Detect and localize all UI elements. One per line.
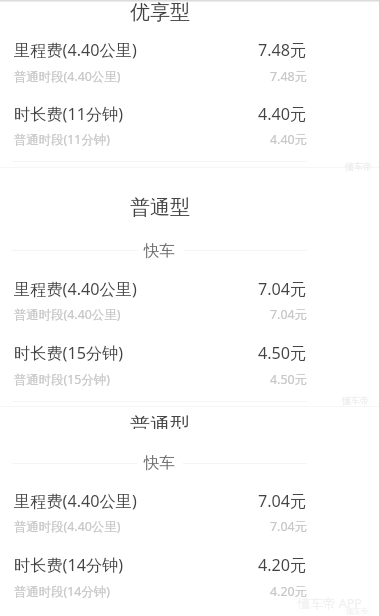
- staticText: 时长费(14分钟): [14, 554, 124, 576]
- button[interactable]: [0, 482, 379, 546]
- staticText: 4.20元: [270, 583, 307, 600]
- staticText: 4.50元: [270, 371, 307, 388]
- staticText: 普通时段(4.40公里): [14, 68, 121, 85]
- staticText: 时长费(15分钟): [14, 342, 124, 364]
- staticText: 懂车帝: [342, 395, 369, 406]
- button[interactable]: [0, 546, 379, 611]
- staticText: 里程费(4.40公里): [14, 278, 137, 300]
- button[interactable]: [0, 31, 379, 95]
- staticText: 快车: [144, 241, 176, 261]
- staticText: 懂车帝: [346, 607, 369, 616]
- staticText: 时长费(11分钟): [14, 103, 124, 125]
- staticText: 普通型: [130, 195, 190, 220]
- staticText: 优享型: [130, 0, 190, 25]
- staticText: 普通时段(4.40公里): [14, 518, 121, 535]
- staticText: 普通时段(11分钟): [14, 131, 110, 148]
- staticText: 7.48元: [258, 39, 307, 61]
- staticText: 4.40元: [270, 131, 307, 148]
- staticText: 普通时段(4.40公里): [14, 306, 121, 323]
- staticText: 7.04元: [270, 306, 307, 323]
- staticText: 4.50元: [258, 342, 307, 364]
- staticText: 里程费(4.40公里): [14, 490, 137, 512]
- staticText: 懂车帝 APP: [298, 595, 362, 612]
- staticText: 7.04元: [258, 278, 307, 300]
- button[interactable]: [0, 334, 379, 399]
- staticText: 里程费(4.40公里): [14, 39, 137, 61]
- staticText: 7.48元: [270, 68, 307, 85]
- staticText: 7.04元: [270, 518, 307, 535]
- staticText: 4.20元: [258, 554, 307, 576]
- button[interactable]: [0, 270, 379, 334]
- staticText: 懂车帝: [345, 161, 372, 172]
- staticText: 快车: [144, 453, 176, 473]
- staticText: 普通型: [130, 413, 190, 429]
- staticText: 普通时段(14分钟): [14, 583, 110, 600]
- staticText: 7.04元: [258, 490, 307, 512]
- staticText: 4.40元: [258, 103, 307, 125]
- staticText: 普通时段(15分钟): [14, 371, 110, 388]
- button[interactable]: [0, 95, 379, 159]
